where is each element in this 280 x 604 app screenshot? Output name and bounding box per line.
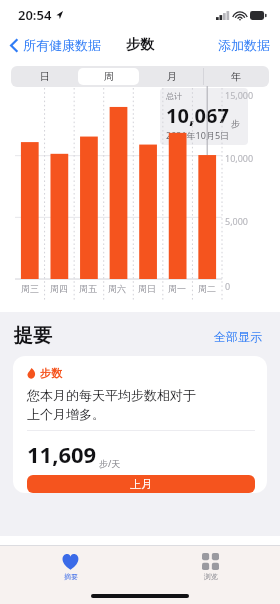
button[interactable]: 浏览: [184, 551, 237, 583]
staticText: 提要: [14, 324, 52, 348]
staticText: 摘要: [64, 572, 78, 581]
button[interactable]: 周: [78, 68, 139, 85]
staticText: 步数: [40, 366, 62, 380]
staticText: 上月: [130, 477, 152, 491]
staticText: 0: [225, 280, 231, 292]
staticText: 月: [167, 70, 177, 83]
staticText: 周三: [21, 283, 39, 294]
staticText: 总计: [166, 91, 182, 101]
button[interactable]: 所有健康数据: [8, 33, 103, 57]
staticText: 15,000: [225, 89, 254, 101]
button[interactable]: 全部显示: [210, 325, 266, 348]
staticText: 11,609: [27, 439, 97, 469]
staticText: 周一: [168, 283, 186, 294]
staticText: 全部显示: [214, 329, 262, 344]
staticText: 步数: [126, 36, 154, 54]
button[interactable]: 上月: [27, 475, 255, 493]
staticText: 步/天: [99, 457, 121, 469]
staticText: 10,067: [166, 102, 229, 129]
staticText: 所有健康数据: [23, 37, 101, 53]
button[interactable]: 年: [205, 68, 266, 85]
staticText: 年: [231, 70, 241, 83]
staticText: 步: [231, 118, 240, 129]
staticText: 周五: [79, 283, 97, 294]
button[interactable]: 步数: [13, 356, 267, 493]
staticText: 浏览: [204, 572, 218, 581]
staticText: 5,000: [225, 215, 249, 227]
staticText: 20:54: [18, 6, 52, 24]
staticText: 10,000: [225, 152, 254, 164]
staticText: 周四: [50, 283, 68, 294]
staticText: 日: [40, 70, 50, 83]
staticText: 上个月增多。: [27, 406, 105, 422]
staticText: 周六: [108, 283, 126, 294]
button[interactable]: 日: [14, 68, 76, 85]
staticText: 添加数据: [218, 37, 270, 53]
staticText: 周: [104, 70, 114, 83]
staticText: 周二: [198, 283, 216, 294]
button[interactable]: 摘要: [43, 551, 98, 583]
button[interactable]: 添加数据: [216, 33, 272, 57]
staticText: 您本月的每天平均步数相对于: [27, 387, 196, 403]
staticText: 2021年10月5日: [166, 129, 230, 141]
button[interactable]: 月: [141, 68, 202, 85]
staticText: 周日: [138, 283, 156, 294]
